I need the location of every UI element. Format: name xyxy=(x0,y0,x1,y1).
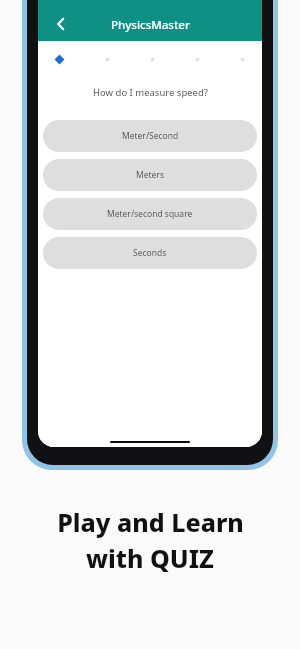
staticText: with QUIZ xyxy=(86,541,214,575)
staticText: Play and Learn xyxy=(57,505,244,539)
button[interactable]: Meter/Second xyxy=(43,120,257,152)
button[interactable]: Meters xyxy=(43,159,257,191)
staticText: Meter/second square xyxy=(107,208,193,220)
staticText: Seconds xyxy=(133,247,167,259)
staticText: PhysicsMaster xyxy=(111,17,190,33)
staticText: Meter/Second xyxy=(122,130,179,142)
button[interactable]: Back xyxy=(44,7,78,41)
button[interactable]: How do I measure speed? xyxy=(43,76,257,108)
button[interactable]: Meter/second square xyxy=(43,198,257,230)
button[interactable]: Seconds xyxy=(43,237,257,269)
staticText: How do I measure speed? xyxy=(93,86,208,99)
staticText: Meters xyxy=(136,169,164,181)
